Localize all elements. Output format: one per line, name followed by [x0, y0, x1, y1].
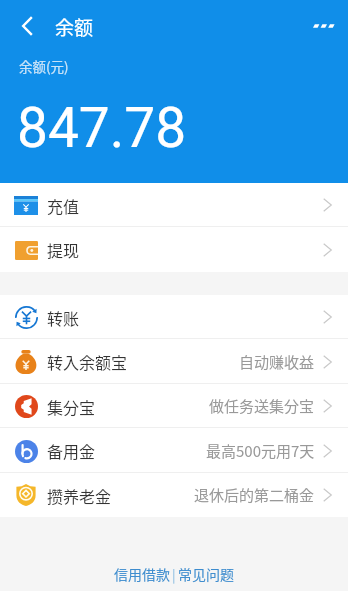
- staticText: 充值: [47, 194, 80, 217]
- button[interactable]: 攒养老金: [0, 473, 348, 517]
- button[interactable]: Back: [10, 9, 44, 43]
- staticText: 提现: [47, 238, 80, 261]
- staticText: 余额(元): [19, 56, 69, 76]
- button[interactable]: 提现: [0, 227, 348, 272]
- staticText: 最高500元用7天: [206, 440, 315, 462]
- button[interactable]: 转入余额宝: [0, 339, 348, 384]
- staticText: |: [172, 565, 176, 584]
- staticText: 做任务送集分宝: [209, 395, 315, 417]
- staticText: 退休后的第二桶金: [194, 484, 315, 506]
- button[interactable]: 备用金: [0, 428, 348, 473]
- staticText: 集分宝: [47, 395, 96, 418]
- staticText: 攒养老金: [47, 484, 112, 507]
- button[interactable]: 转账: [0, 295, 348, 339]
- button[interactable]: 信用借款: [113, 564, 171, 584]
- staticText: 转账: [47, 306, 80, 329]
- button[interactable]: 常见问题: [177, 564, 235, 584]
- staticText: 847.78: [17, 96, 187, 160]
- staticText: 信用借款: [114, 564, 170, 584]
- staticText: 余额: [55, 13, 94, 41]
- button[interactable]: More options: [307, 8, 342, 43]
- staticText: 自动赚收益: [239, 351, 315, 373]
- staticText: 转入余额宝: [47, 350, 128, 373]
- button[interactable]: 充值: [0, 183, 348, 227]
- staticText: 常见问题: [178, 564, 234, 584]
- button[interactable]: 集分宝: [0, 384, 348, 428]
- staticText: 备用金: [47, 439, 96, 462]
